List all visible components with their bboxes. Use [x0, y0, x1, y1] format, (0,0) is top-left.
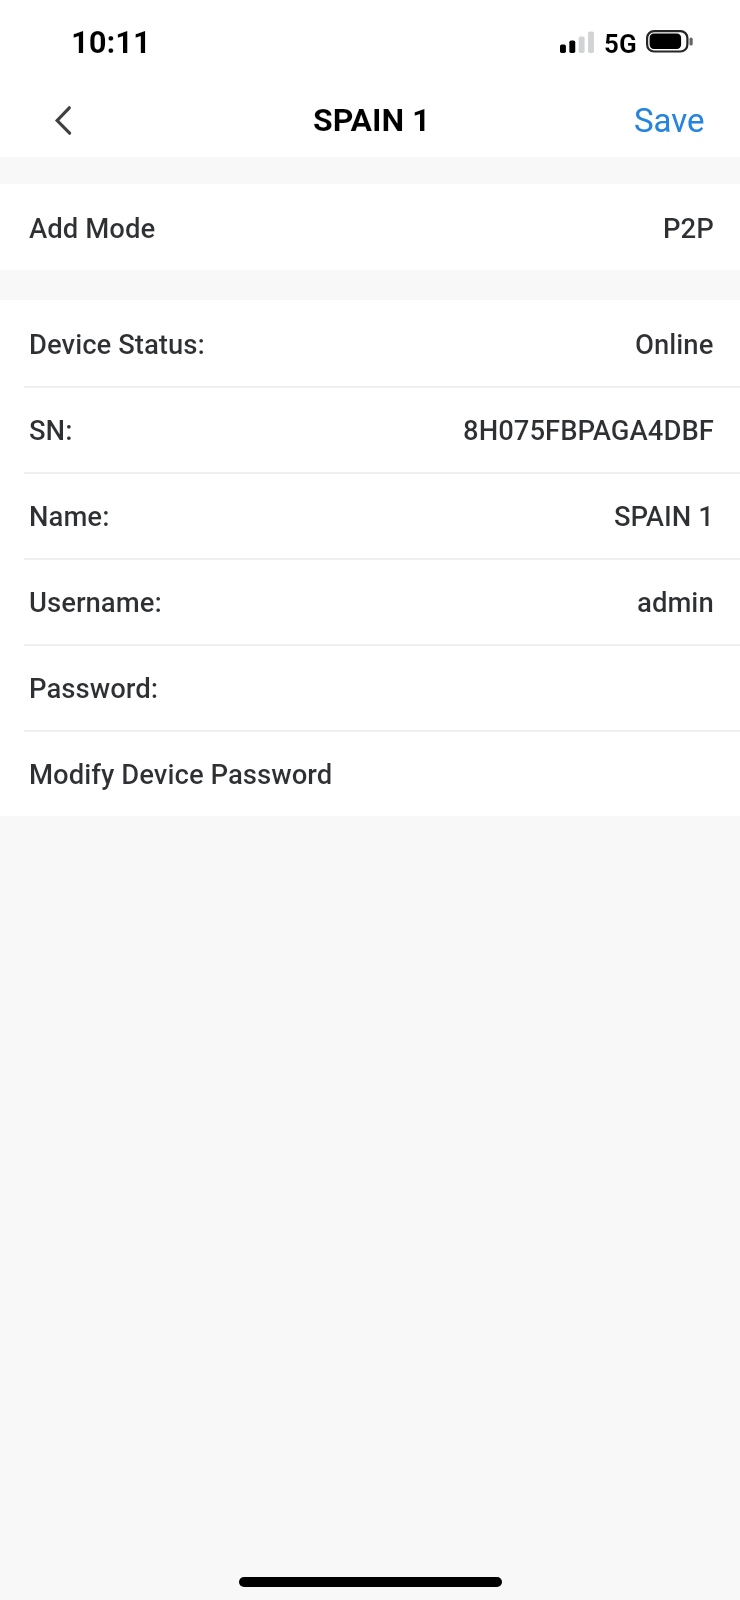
- button[interactable]: Add Mode: [0, 184, 740, 270]
- staticText: SPAIN 1: [614, 500, 714, 532]
- button[interactable]: SN:: [0, 386, 740, 472]
- staticText: Online: [635, 328, 714, 360]
- staticText: SN:: [29, 414, 73, 446]
- button[interactable]: Modify Device Password: [0, 730, 740, 816]
- button[interactable]: Back: [20, 78, 100, 157]
- staticText: 8H075FBPAGA4DBF: [463, 414, 714, 446]
- staticText: admin: [637, 586, 714, 618]
- staticText: Save: [634, 101, 705, 140]
- button[interactable]: Device Status:: [0, 300, 740, 386]
- staticText: Add Mode: [29, 212, 156, 244]
- button[interactable]: Username:: [0, 558, 740, 644]
- button[interactable]: Save: [604, 78, 740, 157]
- staticText: 10:11: [71, 24, 151, 60]
- staticText: Name:: [29, 500, 110, 532]
- staticText: 5G: [604, 29, 637, 59]
- staticText: Password:: [29, 672, 159, 704]
- staticText: Username:: [29, 586, 162, 618]
- staticText: SPAIN 1: [313, 101, 431, 139]
- staticText: P2P: [663, 212, 714, 244]
- button[interactable]: Password:: [0, 644, 740, 730]
- staticText: Modify Device Password: [29, 758, 333, 790]
- staticText: Device Status:: [29, 328, 205, 360]
- button[interactable]: Name:: [0, 472, 740, 558]
